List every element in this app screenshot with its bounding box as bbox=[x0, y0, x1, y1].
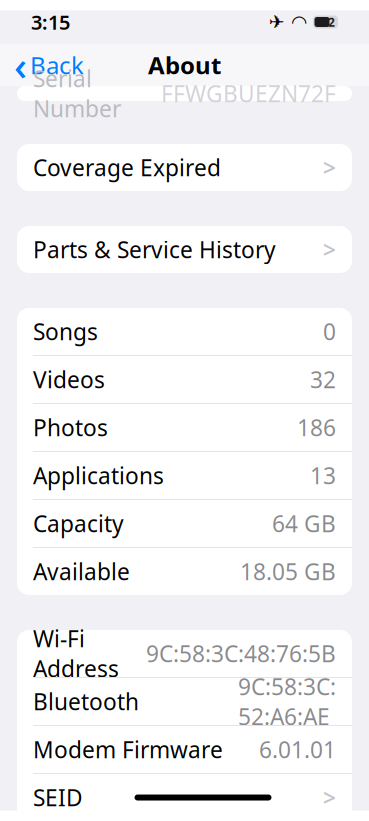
staticText: Coverage Expired bbox=[33, 152, 221, 182]
staticText: 13 bbox=[310, 460, 336, 490]
staticText: 186 bbox=[297, 412, 336, 442]
staticText: Capacity bbox=[33, 508, 124, 538]
staticText: Available bbox=[33, 556, 130, 586]
staticText: ✈ bbox=[269, 11, 285, 33]
staticText: 64 GB bbox=[272, 508, 336, 538]
staticText: Videos bbox=[33, 364, 105, 394]
button[interactable]: ‹ bbox=[4, 44, 94, 86]
staticText: 3:15 bbox=[31, 9, 70, 35]
staticText: Bluetooth bbox=[33, 686, 139, 716]
staticText: Serial Number bbox=[33, 63, 121, 124]
staticText: Songs bbox=[33, 316, 98, 346]
staticText: ‹ bbox=[14, 38, 27, 91]
staticText: > bbox=[323, 782, 336, 812]
staticText: 9C:58:3C:48:76:5B bbox=[146, 638, 336, 668]
staticText: FFWGBUEZN72F bbox=[161, 78, 336, 108]
staticText: Back bbox=[30, 49, 84, 81]
button[interactable]: Coverage Expired bbox=[17, 144, 352, 191]
staticText: ◠ bbox=[292, 11, 306, 33]
staticText: SEID bbox=[33, 782, 83, 812]
staticText: Wi-Fi Address bbox=[33, 623, 119, 684]
staticText: > bbox=[323, 152, 336, 182]
button[interactable]: Parts & Service History bbox=[17, 226, 352, 273]
staticText: 32 bbox=[310, 364, 336, 394]
staticText: Applications bbox=[33, 460, 164, 490]
staticText: 18.05 GB bbox=[240, 556, 336, 586]
staticText: Photos bbox=[33, 412, 108, 442]
staticText: Modem Firmware bbox=[33, 734, 223, 764]
staticText: > bbox=[323, 234, 336, 264]
staticText: 42 bbox=[321, 14, 335, 30]
staticText: About bbox=[148, 49, 221, 81]
staticText: 0 bbox=[323, 316, 336, 346]
button[interactable]: SEID bbox=[17, 774, 352, 821]
staticText: Parts & Service History bbox=[33, 234, 276, 264]
staticText: 9C:58:3C:52:A6:AE bbox=[238, 671, 336, 732]
staticText: 6.01.01 bbox=[259, 734, 336, 764]
